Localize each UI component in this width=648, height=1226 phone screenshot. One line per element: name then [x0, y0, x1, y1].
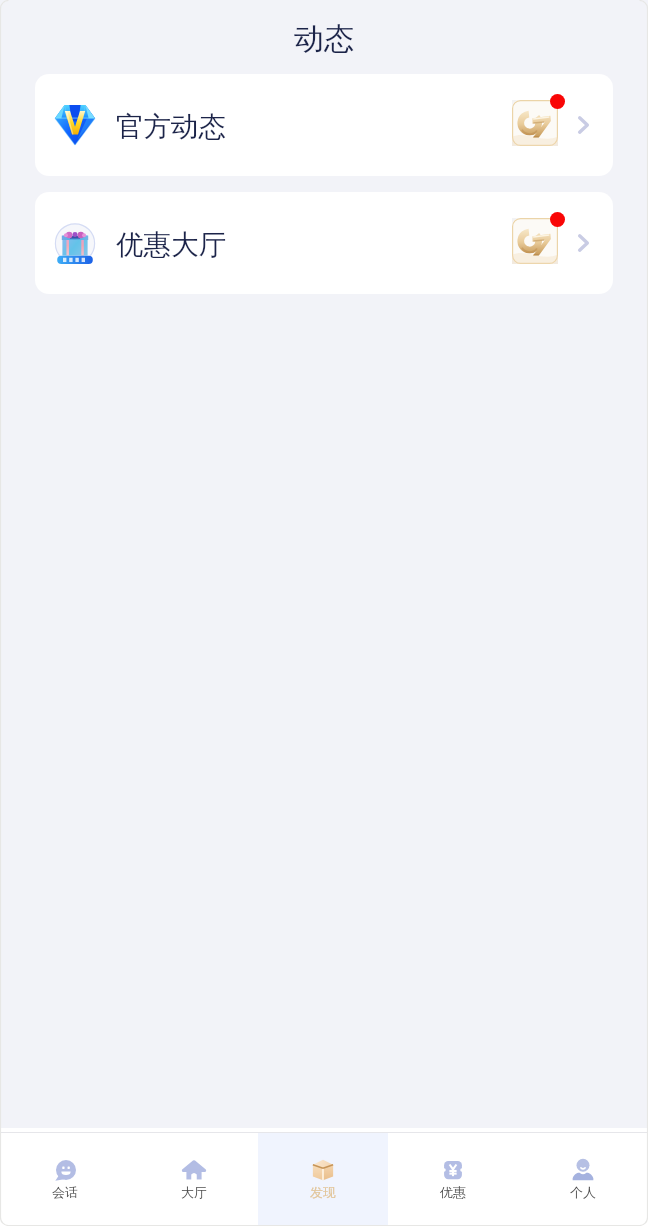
- staticText: 个人: [570, 1184, 596, 1200]
- staticText: 动态: [294, 20, 354, 58]
- staticText: 大厅: [181, 1184, 207, 1200]
- staticText: 会话: [52, 1184, 78, 1200]
- button[interactable]: 个人: [518, 1133, 648, 1226]
- staticText: 优惠: [440, 1184, 466, 1200]
- button[interactable]: 优惠大厅: [35, 192, 613, 294]
- button[interactable]: 大厅: [129, 1133, 258, 1226]
- button[interactable]: 优惠: [388, 1133, 518, 1226]
- button[interactable]: 会话: [0, 1133, 129, 1226]
- button[interactable]: 发现: [258, 1133, 388, 1226]
- staticText: 优惠大厅: [116, 228, 226, 263]
- staticText: 发现: [310, 1184, 336, 1200]
- button[interactable]: 官方动态: [35, 74, 613, 176]
- staticText: 官方动态: [116, 110, 226, 145]
